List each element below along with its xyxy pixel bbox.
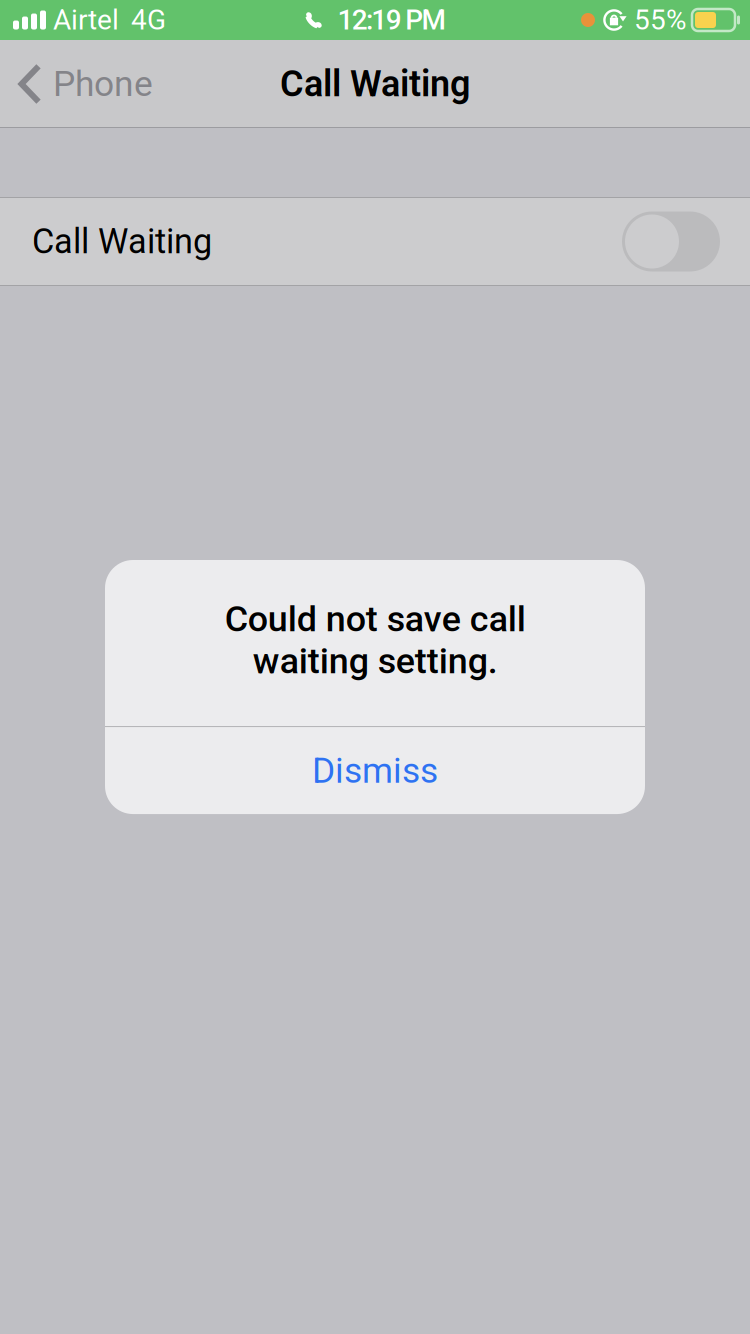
- staticText: Phone: [53, 63, 153, 105]
- staticText: Call Waiting: [280, 63, 470, 105]
- staticText: 4G: [131, 4, 166, 36]
- button[interactable]: Call Waiting: [0, 198, 750, 285]
- staticText: Dismiss: [312, 750, 438, 791]
- staticText: Could not save call waiting setting.: [224, 598, 525, 682]
- button[interactable]: Back to Phone: [0, 49, 167, 119]
- staticText: 12:19 PM: [337, 4, 446, 36]
- staticText: 55%: [634, 4, 687, 36]
- staticText: Call Waiting: [32, 221, 212, 262]
- staticText: Airtel: [53, 4, 119, 36]
- button[interactable]: Dismiss: [105, 727, 645, 814]
